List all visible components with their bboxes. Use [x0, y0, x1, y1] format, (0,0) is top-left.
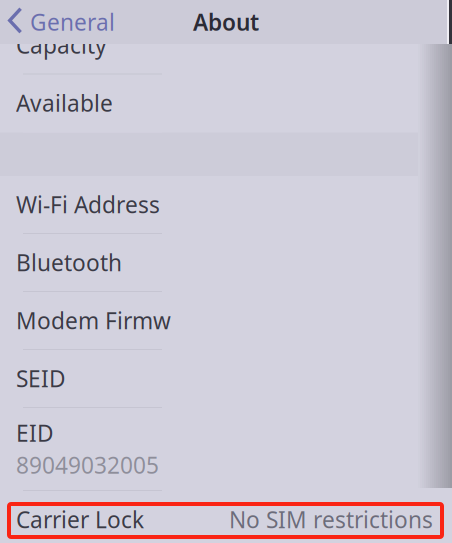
staticText: 89049032005 — [16, 450, 159, 480]
staticText: Wi-Fi Address — [16, 189, 160, 219]
button[interactable]: Modem Firmw — [0, 292, 452, 350]
button[interactable]: SEID — [0, 350, 452, 408]
button[interactable]: Wi-Fi Address — [0, 176, 452, 234]
staticText: General — [30, 7, 115, 37]
staticText: About — [193, 7, 259, 37]
staticText: Modem Firmw — [16, 305, 171, 335]
staticText: SEID — [16, 363, 66, 393]
staticText: Bluetooth — [16, 247, 122, 277]
button[interactable]: Carrier Lock — [0, 491, 452, 543]
staticText: Carrier Lock — [16, 504, 144, 534]
staticText: Available — [16, 88, 113, 118]
button[interactable]: Bluetooth — [0, 234, 452, 292]
button[interactable]: EID — [0, 408, 452, 491]
staticText: Capacity — [16, 30, 107, 60]
button[interactable]: Capacity — [0, 16, 452, 74]
staticText: No SIM restrictions — [229, 504, 433, 534]
staticText: EID — [16, 418, 54, 448]
button[interactable]: General — [0, 0, 123, 44]
button[interactable]: Available — [0, 74, 452, 132]
